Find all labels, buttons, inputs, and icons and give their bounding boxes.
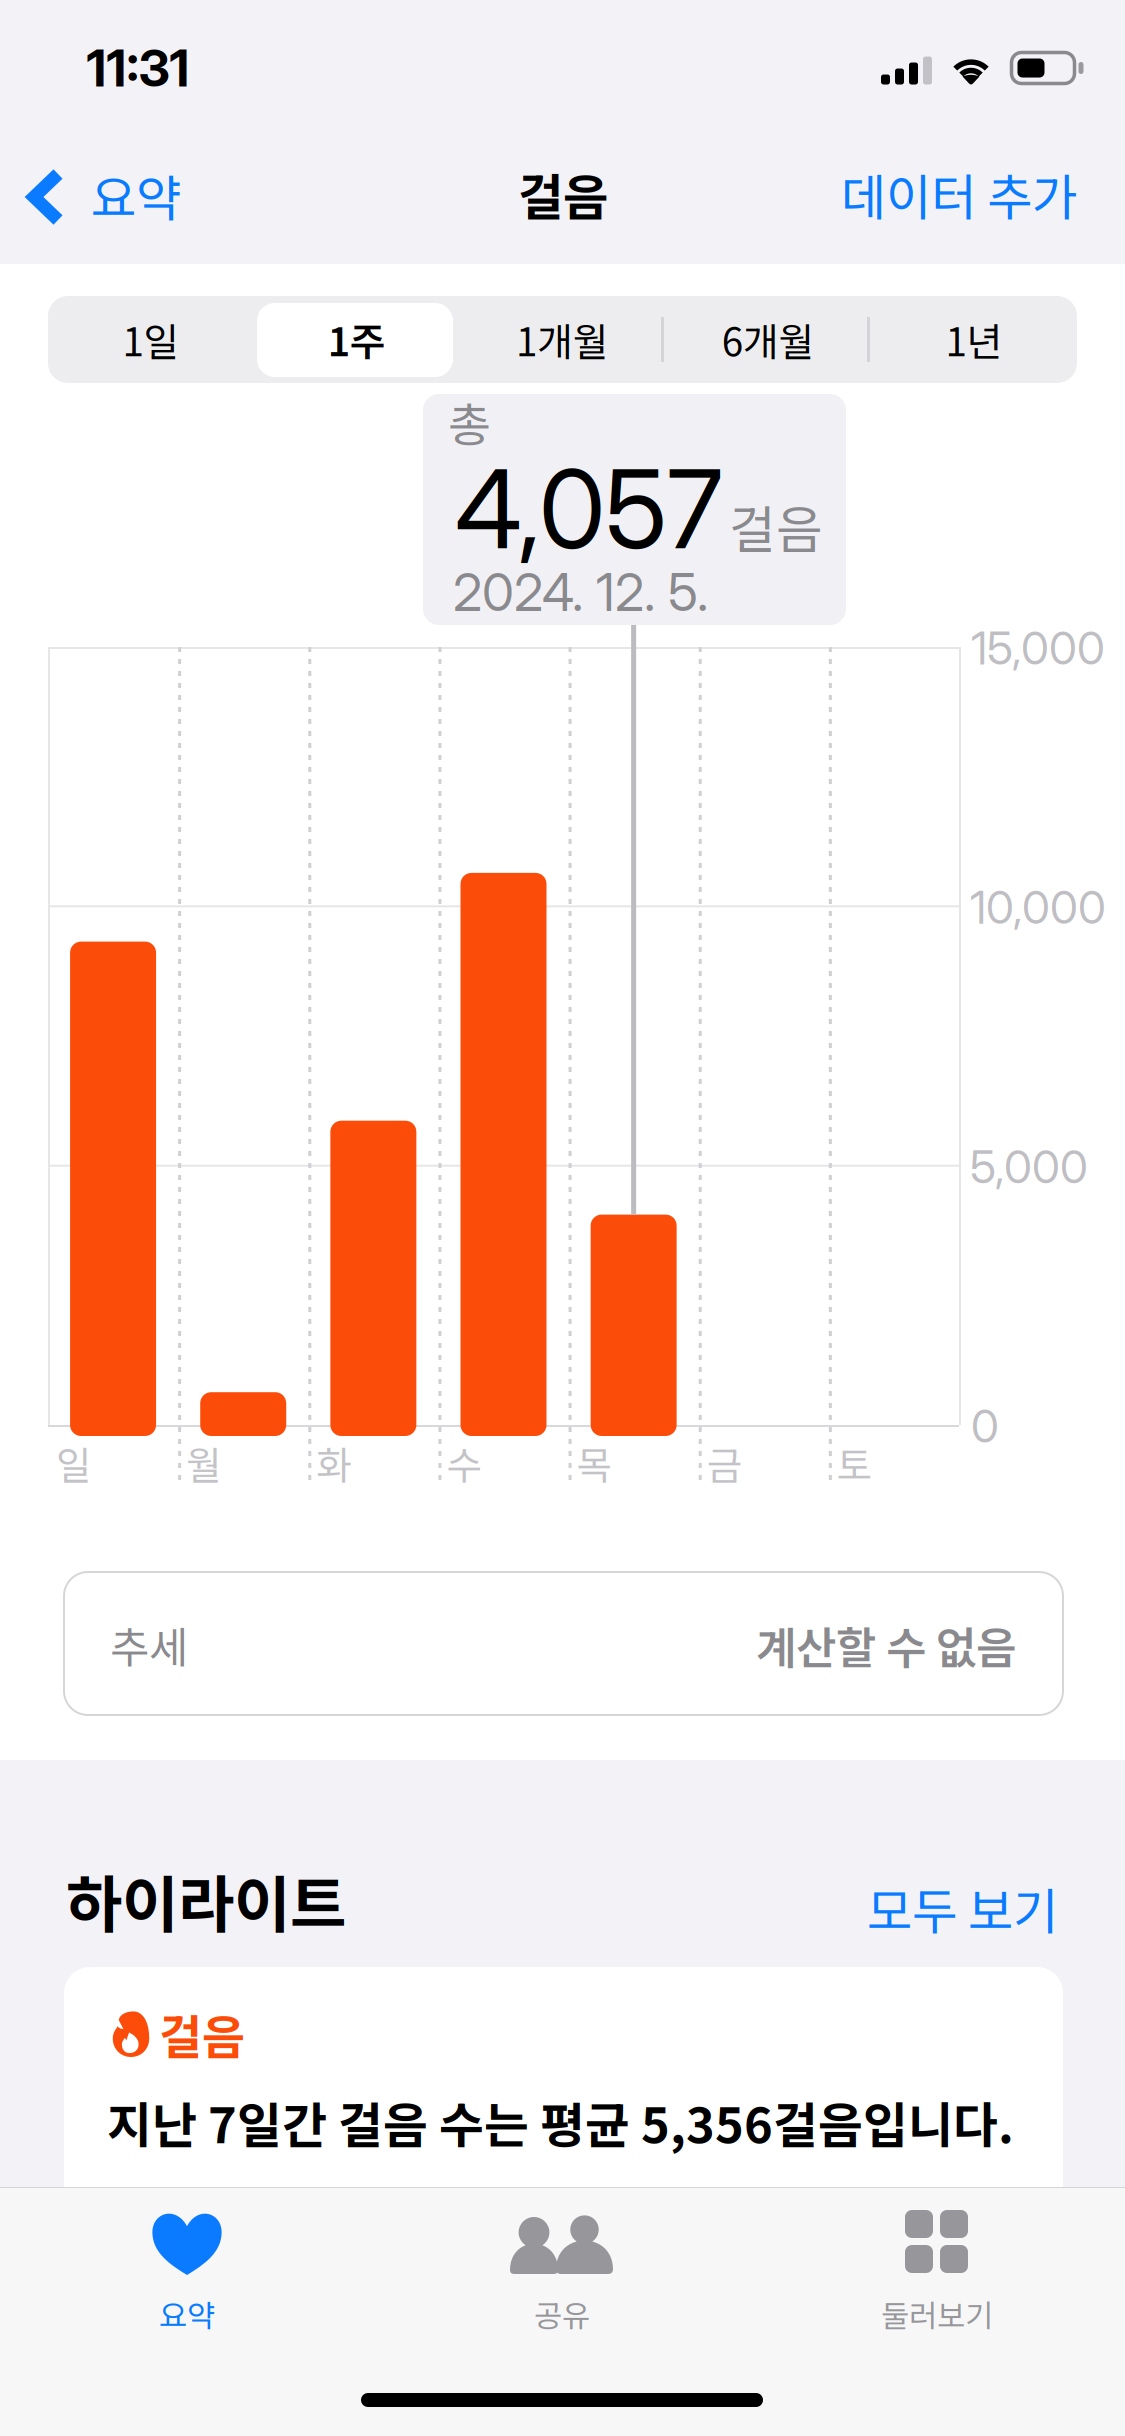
staticText: 걸음 [518, 158, 608, 230]
button[interactable]: 둘러보기 [750, 2187, 1125, 2367]
staticText: 10,000 [970, 880, 1106, 935]
button[interactable]: 데이터 추가 [785, 134, 1125, 264]
button[interactable]: 1일 [48, 296, 254, 383]
staticText: 걸음 [729, 489, 823, 563]
staticText: 토 [837, 1435, 873, 1491]
staticText: 15,000 [971, 621, 1105, 675]
button[interactable]: 6개월 [665, 296, 871, 383]
staticText: 0 [971, 1399, 999, 1453]
staticText: 1일 [122, 311, 179, 367]
staticText: 요약 [159, 2292, 215, 2336]
button[interactable]: 추세 [64, 1572, 1063, 1715]
staticText: 1주 [328, 311, 386, 367]
staticText: 1개월 [516, 311, 609, 367]
staticText: 총 [448, 388, 491, 456]
staticText: 1년 [946, 311, 1003, 367]
button[interactable]: 1주 [254, 296, 460, 383]
staticText: 둘러보기 [881, 2292, 993, 2336]
staticText: 지난 7일간 걸음 수는 평균 5,356걸음입니다. [107, 2087, 1014, 2157]
staticText: 수 [446, 1435, 482, 1491]
button[interactable]: 하이라이트 [66, 1860, 466, 1940]
staticText: 6개월 [722, 311, 815, 367]
staticText: 4,057 [455, 444, 723, 574]
staticText: 2024. 12. 5. [453, 560, 708, 623]
button[interactable]: 공유 [375, 2187, 750, 2367]
staticText: 데이터 추가 [841, 158, 1077, 230]
staticText: 목 [577, 1435, 613, 1491]
button[interactable]: 걸음 [64, 1967, 1063, 2227]
staticText: 요약 [91, 159, 181, 231]
staticText: 일 [56, 1435, 92, 1491]
staticText: 공유 [534, 2292, 590, 2336]
staticText: 하이라이트 [66, 1856, 346, 1944]
button[interactable]: 1개월 [460, 296, 665, 383]
button[interactable]: 요약 [0, 134, 260, 264]
button[interactable]: 요약 [0, 2187, 375, 2367]
staticText: 11:31 [86, 37, 189, 99]
button[interactable]: 1년 [871, 296, 1077, 383]
staticText: 금 [707, 1435, 743, 1491]
staticText: 걸음 [159, 2000, 245, 2068]
staticText: 모두 보기 [867, 1872, 1058, 1944]
staticText: 계산할 수 없음 [756, 1613, 1016, 1677]
staticText: 월 [186, 1435, 222, 1491]
staticText: 추세 [110, 1614, 188, 1676]
staticText: 화 [316, 1435, 352, 1491]
staticText: 5,000 [970, 1139, 1088, 1194]
button[interactable]: 모두 보기 [798, 1868, 1058, 1948]
